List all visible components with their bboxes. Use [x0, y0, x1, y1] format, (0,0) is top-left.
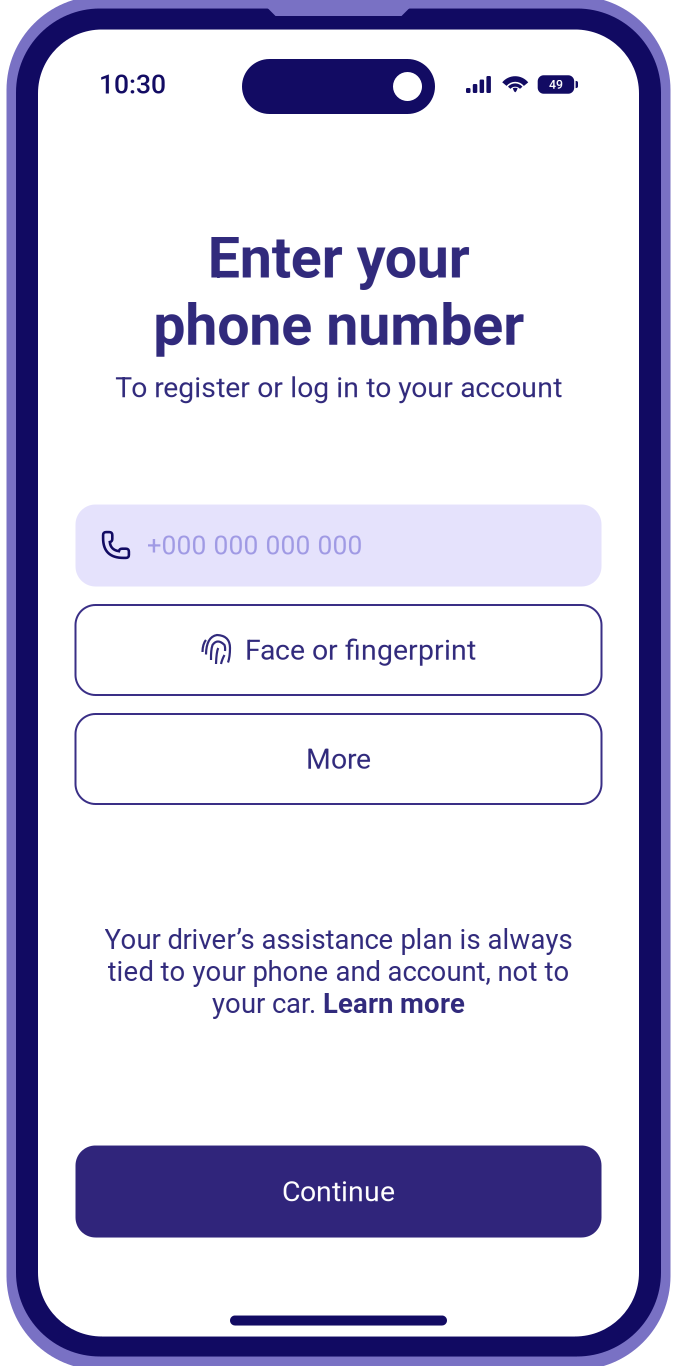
- button[interactable]: Face or fingerprint: [75, 605, 601, 695]
- button[interactable]: +000 000 000 000: [75, 504, 601, 586]
- staticText: Continue: [282, 1175, 395, 1208]
- button[interactable]: Learn more: [323, 987, 465, 1020]
- staticText: Face or fingerprint: [245, 633, 476, 667]
- staticText: To register or log in to your account: [115, 371, 562, 404]
- staticText: Your driver’s assistance plan is always: [104, 923, 572, 956]
- staticText: +000 000 000 000: [146, 530, 362, 561]
- staticText: 49: [549, 77, 563, 92]
- staticText: More: [306, 742, 371, 776]
- staticText: tied to your phone and account, not to: [107, 955, 569, 988]
- staticText: Learn more: [323, 987, 465, 1020]
- staticText: 10:30: [99, 69, 166, 100]
- button[interactable]: Continue: [75, 1145, 601, 1237]
- staticText: your car.: [212, 987, 323, 1020]
- button[interactable]: More: [75, 714, 601, 804]
- staticText: Enter your phone number: [153, 224, 524, 359]
